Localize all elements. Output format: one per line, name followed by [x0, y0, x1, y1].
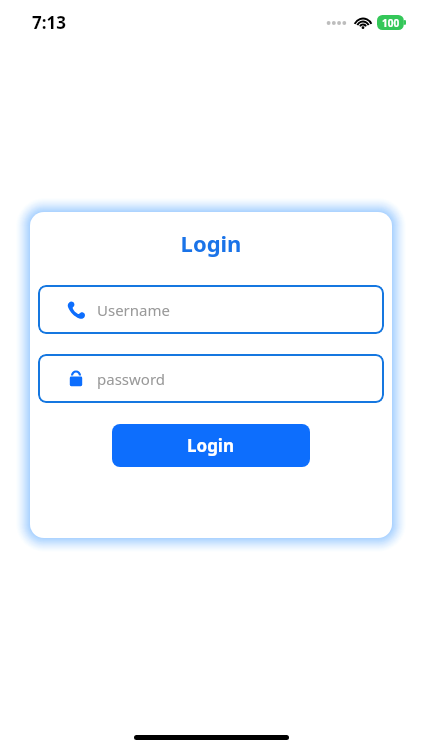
staticText: Login	[187, 434, 235, 457]
button[interactable]: Password	[38, 354, 384, 403]
staticText: 7:13	[32, 11, 66, 34]
staticText: 100	[382, 16, 400, 30]
other: Password	[66, 369, 86, 389]
staticText: Login	[30, 228, 392, 258]
staticText: Username	[97, 300, 170, 320]
other: Username	[66, 300, 86, 320]
button[interactable]: Login	[112, 424, 310, 467]
staticText: password	[97, 369, 165, 389]
button[interactable]: Username	[38, 285, 384, 334]
